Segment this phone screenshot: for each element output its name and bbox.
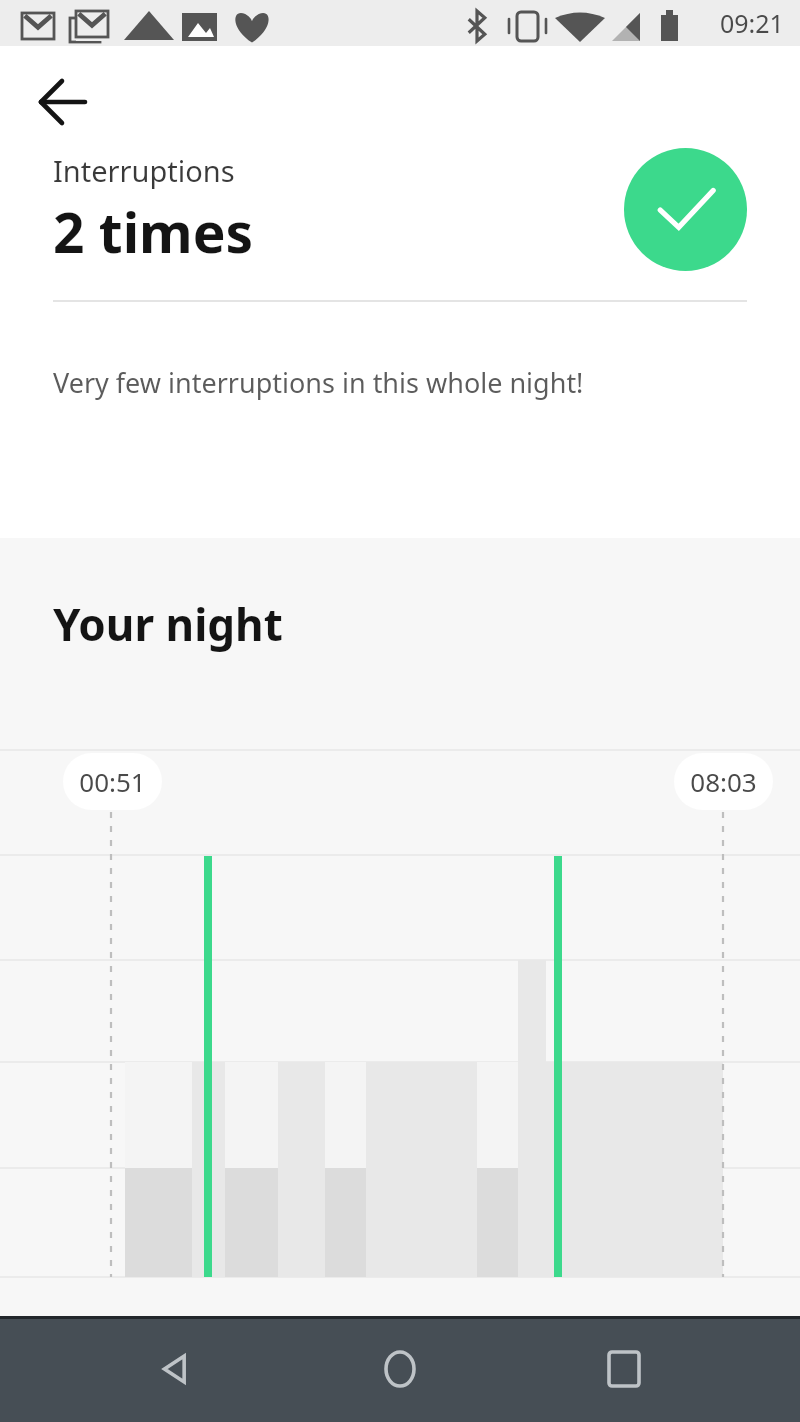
staticText: 2 times: [53, 194, 254, 269]
button[interactable]: Result good: [624, 148, 747, 271]
staticText: 00:51: [79, 764, 146, 799]
button[interactable]: Back: [28, 68, 96, 136]
staticText: 08:03: [690, 764, 757, 799]
staticText: Very few interruptions in this whole nig…: [53, 364, 584, 401]
staticText: Interruptions: [53, 151, 235, 190]
staticText: Your night: [53, 594, 283, 654]
button[interactable]: Home: [352, 1321, 448, 1417]
staticText: 09:21: [720, 6, 784, 40]
button[interactable]: Back: [128, 1321, 224, 1417]
button[interactable]: 00:51: [63, 753, 162, 810]
button[interactable]: 08:03: [674, 753, 773, 810]
button[interactable]: Recent apps: [576, 1321, 672, 1417]
